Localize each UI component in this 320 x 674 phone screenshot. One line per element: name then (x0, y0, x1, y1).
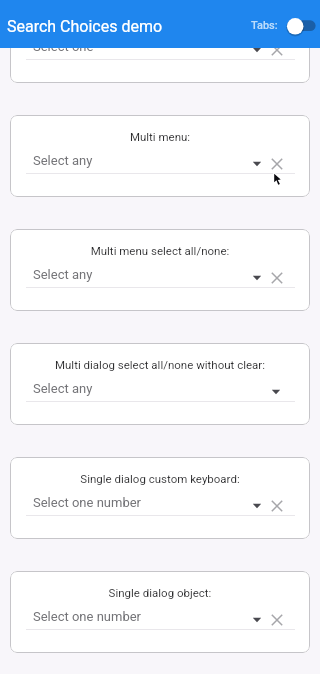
staticText: Select one number (33, 609, 142, 624)
staticText: Select any (33, 267, 93, 282)
button[interactable]: Clear (265, 152, 289, 176)
button[interactable]: Multi menu select all/none: (10, 229, 310, 311)
staticText: Search Choices demo (7, 17, 163, 36)
button[interactable]: Open dropdown (245, 152, 269, 176)
staticText: Single dialog custom keyboard: (10, 472, 310, 485)
staticText: Tabs: (251, 19, 278, 32)
staticText: Select any (33, 381, 93, 396)
button[interactable]: Clear (265, 608, 289, 632)
button[interactable]: Clear (265, 266, 289, 290)
staticText: Select any (33, 153, 93, 168)
staticText: Single dialog object: (10, 586, 310, 599)
staticText: Multi menu: (10, 130, 310, 143)
staticText: Single menu: (10, 16, 310, 29)
button[interactable]: Clear (265, 494, 289, 518)
button[interactable]: Single menu: (10, 1, 310, 83)
button[interactable]: Open dropdown (245, 266, 269, 290)
staticText: Multi menu select all/none: (10, 244, 310, 257)
button[interactable]: Single dialog object: (10, 571, 310, 653)
button[interactable]: Open dropdown (245, 494, 269, 518)
button[interactable]: Open dropdown (245, 38, 269, 62)
button[interactable]: Multi dialog select all/none without cle… (10, 343, 310, 425)
button[interactable]: Open dropdown (264, 380, 288, 404)
button[interactable]: Clear (265, 38, 289, 62)
staticText: Select one number (33, 495, 142, 510)
button[interactable]: Open dropdown (245, 608, 269, 632)
staticText: Multi dialog select all/none without cle… (10, 358, 310, 371)
button[interactable]: Multi menu: (10, 115, 310, 197)
button[interactable]: Single dialog custom keyboard: (10, 457, 310, 539)
staticText: Select one (33, 39, 94, 54)
button[interactable]: Tabs switch (282, 9, 320, 39)
